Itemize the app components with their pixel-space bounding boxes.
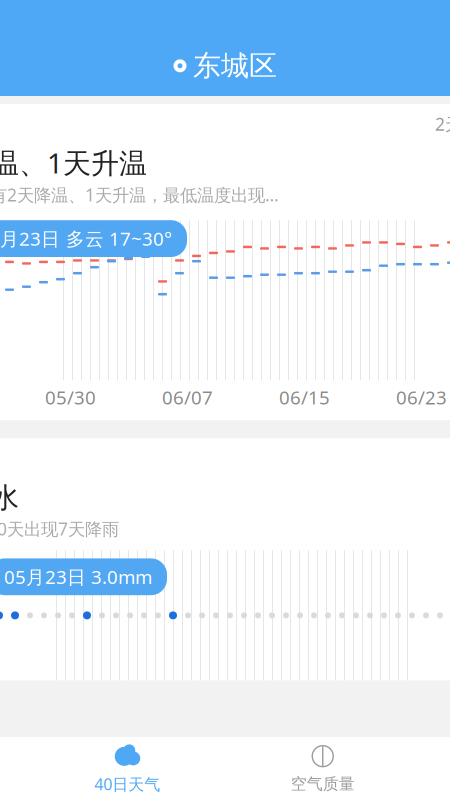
staticText: 预计未来40天出现7天降雨 <box>0 517 119 540</box>
button[interactable]: 40日天气 <box>29 739 225 797</box>
staticText: 05月23日 多云 17~30° <box>0 226 172 251</box>
staticText: 06/23 <box>396 385 447 410</box>
button[interactable]: 东城区 <box>173 49 277 83</box>
staticText: 06/07 <box>162 385 213 410</box>
staticText: 空气质量 <box>291 774 355 794</box>
staticText: 未来40天有2天降温、1天升温，最低温度出现… <box>0 183 279 206</box>
staticText: 东城区 <box>193 49 277 83</box>
staticText: 2天降温、1天升温 <box>0 144 147 181</box>
staticText: 06/15 <box>279 385 330 410</box>
staticText: 05月23日 3.0mm <box>4 564 152 589</box>
staticText: 05/30 <box>45 385 96 410</box>
button[interactable]: 空气质量 <box>225 739 420 797</box>
button[interactable]: 2天降温、1天升温 <box>435 109 450 139</box>
staticText: 40日天气 <box>94 773 160 795</box>
staticText: 2天降温、1天升温 <box>435 112 450 135</box>
staticText: 7天降水 <box>0 478 19 515</box>
